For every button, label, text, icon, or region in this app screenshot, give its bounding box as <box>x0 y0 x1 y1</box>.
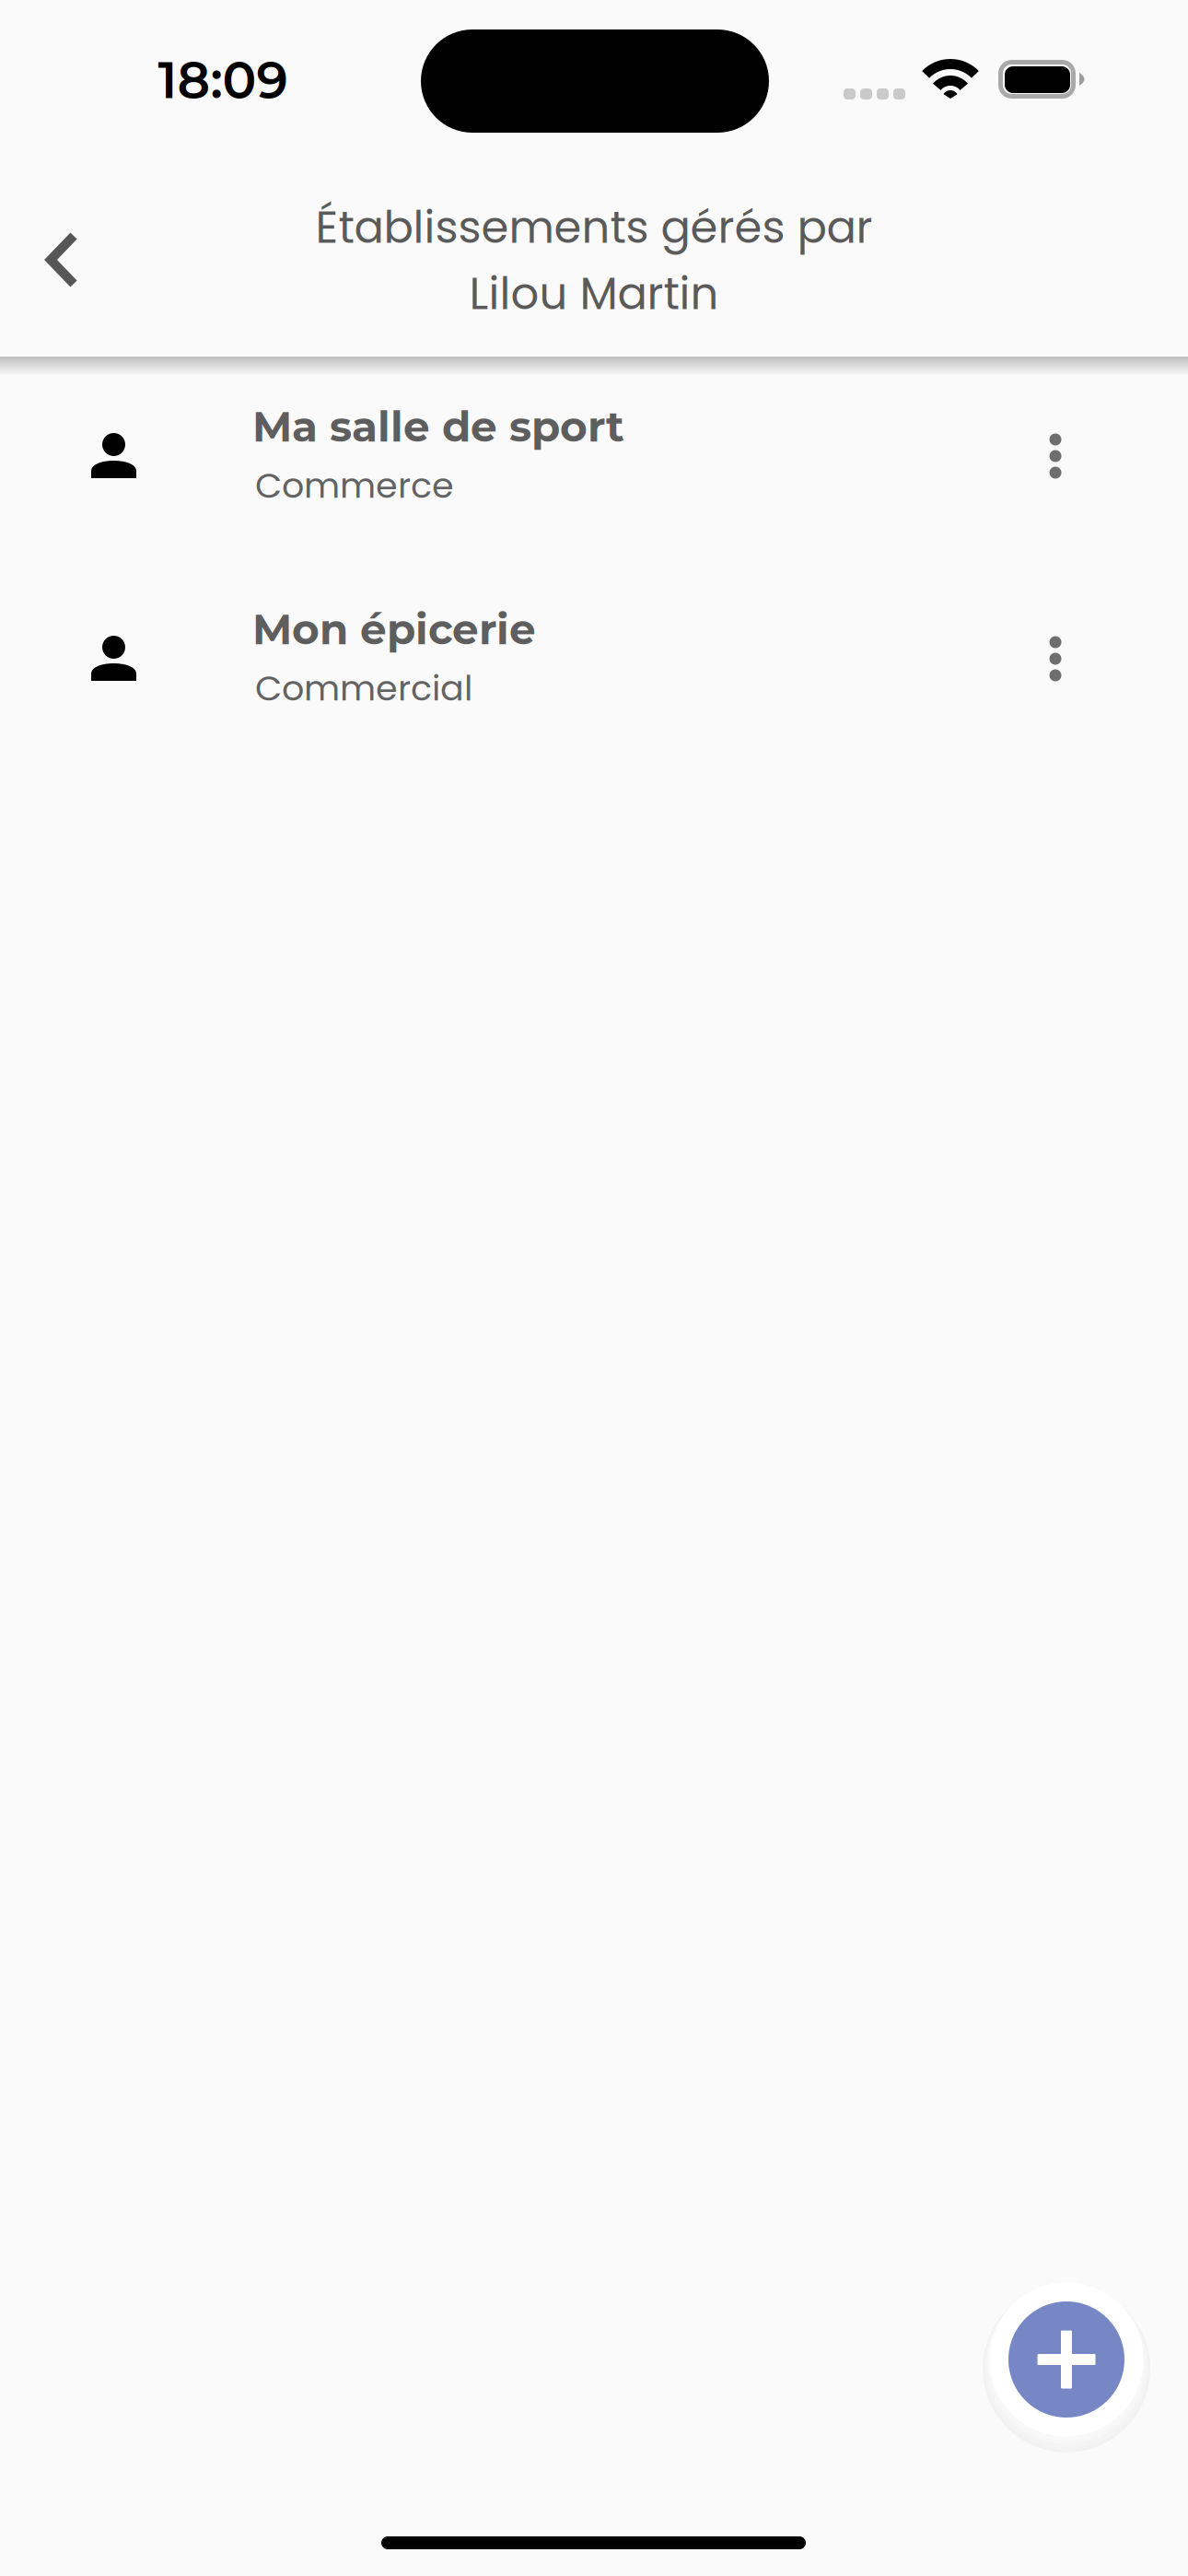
button[interactable]: More options <box>1004 603 1107 714</box>
staticText: Commerce <box>255 461 454 510</box>
staticText: 18:09 <box>158 49 288 111</box>
staticText: Mon épicerie <box>252 604 536 655</box>
button[interactable]: More options <box>1004 401 1107 511</box>
button[interactable]: Back <box>11 198 119 327</box>
button[interactable]: Ma salle de sport <box>0 357 1188 559</box>
staticText: Ma salle de sport <box>252 401 624 452</box>
staticText: Commercial <box>255 664 472 713</box>
button[interactable]: Mon épicerie <box>0 559 1188 762</box>
button[interactable]: Add <box>978 2271 1155 2448</box>
staticText: Établissements gérés par <box>315 196 873 258</box>
staticText: Lilou Martin <box>469 263 719 325</box>
